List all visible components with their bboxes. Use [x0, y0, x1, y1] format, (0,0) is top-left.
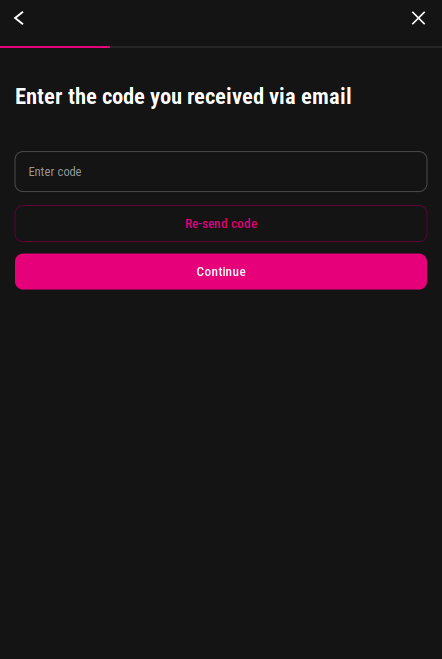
- button[interactable]: Re-send code: [15, 206, 427, 242]
- button[interactable]: Back: [0, 0, 38, 36]
- staticText: Enter code: [28, 164, 81, 179]
- staticText: Re-send code: [185, 216, 257, 231]
- button[interactable]: Continue: [15, 254, 427, 290]
- button[interactable]: Close: [395, 0, 442, 36]
- staticText: Enter the code you received via email: [15, 83, 352, 110]
- staticText: Continue: [196, 264, 245, 279]
- button[interactable]: Enter code: [15, 152, 427, 192]
